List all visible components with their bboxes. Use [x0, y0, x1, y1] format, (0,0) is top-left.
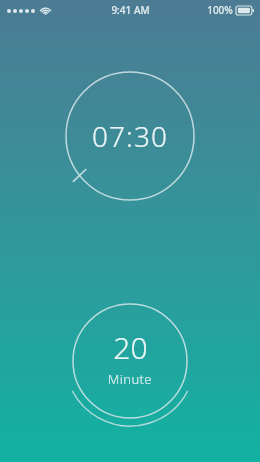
- staticText: 20: [113, 327, 148, 368]
- button[interactable]: Alarm time 07:30: [56, 62, 204, 210]
- staticText: 07:30: [92, 117, 168, 155]
- button[interactable]: Snooze 20 minutes: [56, 287, 204, 435]
- staticText: Minute: [108, 370, 152, 388]
- staticText: 9:41 AM: [111, 3, 150, 17]
- staticText: 100%: [207, 3, 233, 17]
